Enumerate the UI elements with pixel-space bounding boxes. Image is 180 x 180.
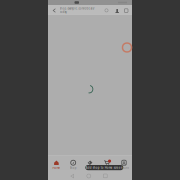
- staticText: shop.example.com/c/deals/today: [59, 7, 94, 14]
- button[interactable]: Share: [114, 7, 120, 14]
- staticText: Cart: [104, 166, 109, 170]
- button[interactable]: Cart: [98, 156, 115, 170]
- button[interactable]: Back: [51, 7, 58, 14]
- staticText: Deals: [86, 166, 93, 170]
- button[interactable]: Account: [115, 156, 132, 170]
- button[interactable]: Address bar: [59, 7, 97, 13]
- button[interactable]: Tabs: [123, 7, 129, 14]
- button[interactable]: Reload: [103, 7, 109, 13]
- button[interactable]: Home: [85, 172, 92, 180]
- button[interactable]: Add shop to Home screen: [85, 165, 123, 170]
- staticText: Add shop to Home screen: [86, 166, 123, 169]
- button[interactable]: Back: [69, 172, 76, 180]
- button[interactable]: Recent apps: [102, 172, 109, 179]
- staticText: Home: [52, 166, 60, 170]
- button[interactable]: Deals: [82, 156, 98, 170]
- staticText: Shop: [70, 166, 77, 170]
- staticText: Account: [118, 166, 129, 170]
- button[interactable]: Shop: [65, 156, 82, 170]
- button[interactable]: Home: [48, 156, 65, 170]
